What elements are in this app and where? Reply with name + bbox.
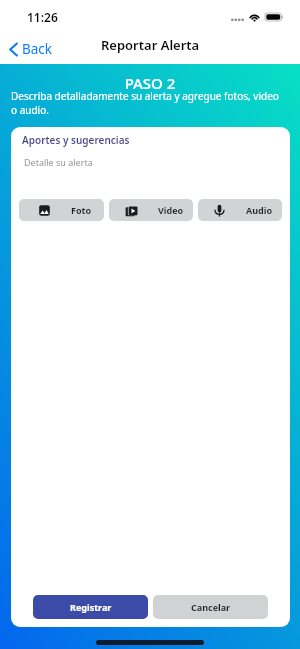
staticText: Registrar xyxy=(70,601,112,613)
staticText: Detalle su alerta xyxy=(24,156,93,168)
staticText: 11:26 xyxy=(27,9,58,25)
staticText: Describa detalladamente su alerta y agre… xyxy=(11,89,292,117)
button[interactable]: Back xyxy=(0,34,65,64)
staticText: Audio xyxy=(246,204,273,216)
button[interactable]: Audio xyxy=(198,199,282,221)
staticText: Cancelar xyxy=(191,601,231,613)
button[interactable]: Cancelar xyxy=(153,595,268,619)
button[interactable]: Video xyxy=(109,199,193,221)
staticText: Reportar Alerta xyxy=(101,36,200,54)
staticText: Back xyxy=(22,40,53,58)
button[interactable]: Foto xyxy=(19,199,104,221)
staticText: Aportes y sugerencias xyxy=(22,133,130,147)
staticText: PASO 2 xyxy=(0,73,300,93)
button[interactable]: Registrar xyxy=(33,595,148,619)
staticText: Foto xyxy=(71,204,92,216)
staticText: Video xyxy=(158,204,184,216)
